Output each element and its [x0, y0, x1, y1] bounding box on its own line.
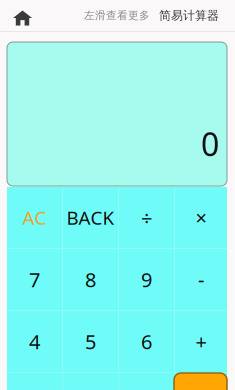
- staticText: AC: [22, 205, 46, 230]
- button[interactable]: 7: [7, 249, 62, 310]
- button[interactable]: ×: [175, 187, 227, 248]
- staticText: 0: [201, 122, 219, 165]
- staticText: ×: [195, 204, 206, 231]
- button[interactable]: Equals: [174, 373, 226, 390]
- staticText: BACK: [66, 205, 114, 230]
- button[interactable]: BACK: [63, 187, 118, 248]
- staticText: 4: [29, 328, 40, 355]
- staticText: 8: [85, 266, 96, 293]
- staticText: 左滑查看更多: [84, 9, 150, 22]
- button[interactable]: -: [175, 249, 227, 310]
- staticText: 7: [29, 266, 40, 293]
- staticText: 简易计算器: [159, 8, 219, 23]
- staticText: 6: [141, 328, 152, 355]
- staticText: 9: [141, 266, 152, 293]
- button[interactable]: AC: [7, 187, 62, 248]
- staticText: -: [198, 266, 204, 293]
- staticText: +: [195, 328, 206, 355]
- staticText: ÷: [141, 204, 152, 231]
- button[interactable]: 5: [63, 311, 118, 372]
- button[interactable]: Home: [0, 0, 38, 31]
- button[interactable]: 4: [7, 311, 62, 372]
- button[interactable]: +: [175, 311, 227, 372]
- button[interactable]: 8: [63, 249, 118, 310]
- button[interactable]: 6: [119, 311, 174, 372]
- button[interactable]: 9: [119, 249, 174, 310]
- button[interactable]: ÷: [119, 187, 174, 248]
- staticText: 5: [85, 328, 96, 355]
- button[interactable]: 3: [119, 373, 174, 390]
